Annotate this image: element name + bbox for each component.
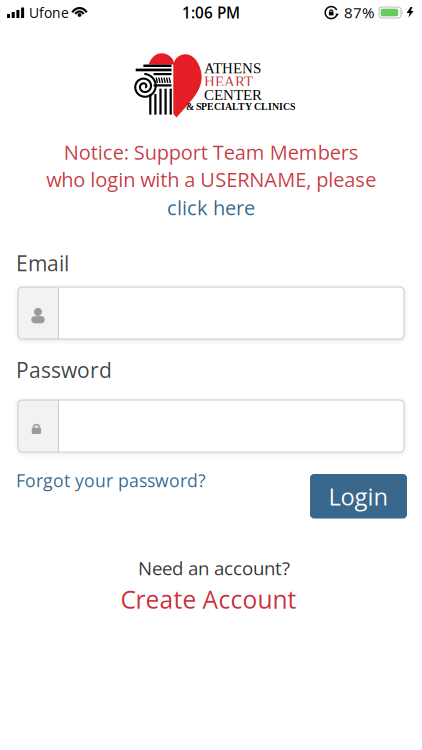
staticText: Need an account?: [138, 555, 290, 581]
staticText: Forgot your password?: [16, 468, 206, 492]
button[interactable]: Login: [310, 474, 407, 518]
staticText: ATHENS: [204, 60, 261, 76]
staticText: Password: [16, 355, 112, 384]
button[interactable]: Forgot your password?: [16, 468, 206, 492]
staticText: 1:06 PM: [182, 2, 240, 23]
staticText: Login: [328, 480, 388, 512]
button[interactable]: Create Account: [120, 582, 296, 616]
staticText: HEART: [204, 73, 253, 90]
staticText: CENTER: [204, 87, 262, 103]
staticText: Ufone: [29, 3, 69, 22]
button[interactable]: click here: [167, 194, 255, 221]
staticText: & SPECIALTY CLINICS: [186, 101, 295, 112]
staticText: Notice: Support Team Members who login w…: [46, 138, 376, 193]
button[interactable]: [18, 400, 404, 452]
staticText: click here: [167, 194, 255, 221]
staticText: 87%: [344, 2, 374, 23]
staticText: Create Account: [120, 582, 296, 616]
button[interactable]: [18, 287, 404, 339]
staticText: Email: [16, 249, 69, 277]
